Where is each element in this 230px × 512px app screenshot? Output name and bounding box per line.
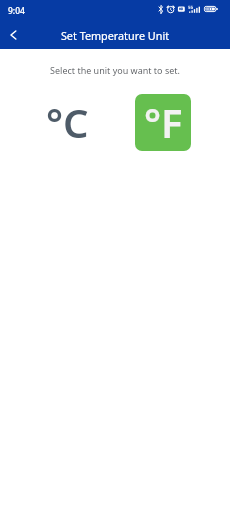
- staticText: Set Temperature Unit: [0, 28, 230, 43]
- staticText: Select the unit you want to set.: [0, 64, 230, 76]
- button[interactable]: °C: [38, 93, 96, 150]
- staticText: 9:04: [8, 5, 25, 17]
- button[interactable]: Back: [0, 21, 26, 49]
- staticText: °F: [144, 95, 183, 149]
- staticText: °C: [46, 95, 89, 149]
- button[interactable]: °F: [135, 94, 191, 151]
